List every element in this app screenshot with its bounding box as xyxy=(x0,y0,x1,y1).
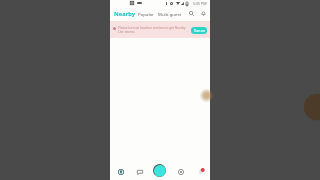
staticText: 5:05 PM xyxy=(193,1,207,6)
button[interactable]: Search xyxy=(187,9,196,18)
staticText: Multi-guest xyxy=(158,11,182,17)
staticText: Turn on xyxy=(194,29,205,33)
button[interactable]: Turn on xyxy=(191,27,207,34)
button[interactable]: Camera xyxy=(153,164,166,177)
button[interactable]: Notifications xyxy=(199,9,208,18)
button[interactable]: Please turn on location services to get … xyxy=(110,21,210,38)
button[interactable]: Spotlight xyxy=(196,165,207,176)
button[interactable]: Chat xyxy=(134,166,145,177)
button[interactable]: Places xyxy=(115,166,126,177)
button[interactable]: Discover xyxy=(175,166,186,177)
staticText: Please turn on location services to get … xyxy=(118,26,189,34)
button[interactable]: Multi-guest xyxy=(155,8,185,19)
button[interactable]: Popular xyxy=(135,8,157,19)
staticText: Nearby xyxy=(114,10,136,18)
button[interactable]: Nearby xyxy=(111,8,139,19)
staticText: Popular xyxy=(138,11,154,17)
